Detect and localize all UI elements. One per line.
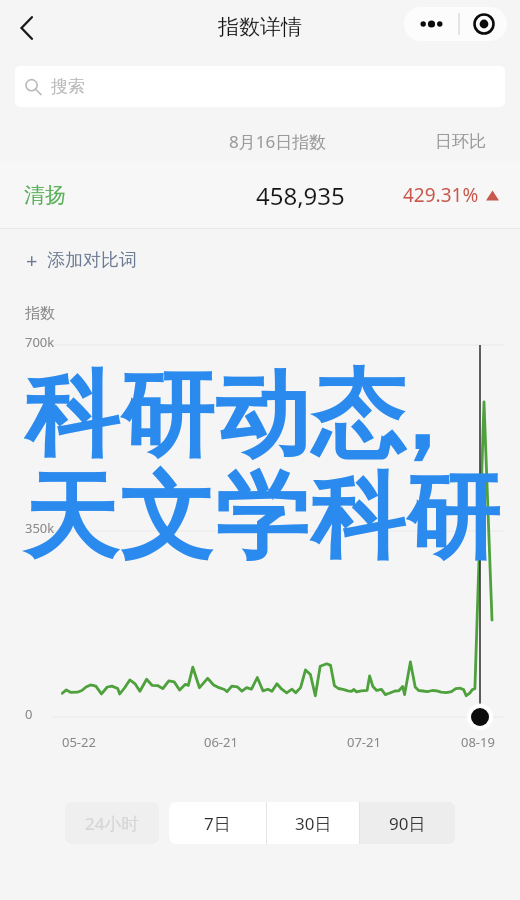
button[interactable]: 30日 xyxy=(267,802,359,844)
staticText: 08-19 xyxy=(461,733,495,751)
staticText: 清扬 xyxy=(24,182,66,208)
button[interactable]: 清扬 xyxy=(0,161,520,229)
button[interactable]: Close mini program xyxy=(460,7,507,41)
staticText: 700k xyxy=(25,333,55,351)
staticText: 日环比 xyxy=(435,131,486,152)
staticText: 24小时 xyxy=(85,812,139,835)
button[interactable]: More options xyxy=(404,7,458,41)
staticText: 30日 xyxy=(295,812,332,835)
button[interactable]: 90日 xyxy=(360,802,455,844)
staticText: 搜索 xyxy=(51,76,85,97)
staticText: 458,935 xyxy=(256,179,345,212)
button[interactable]: 24小时 xyxy=(65,802,159,844)
staticText: 350k xyxy=(25,519,55,537)
staticText: 06-21 xyxy=(204,733,238,751)
staticText: 添加对比词 xyxy=(47,249,137,272)
staticText: ， xyxy=(373,358,469,476)
button[interactable]: 7日 xyxy=(169,802,266,844)
staticText: 429.31% xyxy=(403,182,479,208)
staticText: 指数 xyxy=(25,304,55,323)
button[interactable]: 搜索 xyxy=(15,66,505,107)
staticText: 8月16日指数 xyxy=(229,130,327,153)
button[interactable]: Back xyxy=(4,6,48,50)
button[interactable]: + xyxy=(0,229,520,291)
staticText: + xyxy=(26,247,38,274)
staticText: 90日 xyxy=(389,812,426,835)
staticText: 05-22 xyxy=(62,733,96,751)
staticText: 科研动态 xyxy=(24,356,406,474)
staticText: 天文学科研 xyxy=(24,458,502,576)
staticText: 0 xyxy=(25,705,33,723)
staticText: 指数详情 xyxy=(218,14,302,40)
staticText: 7日 xyxy=(204,812,231,835)
staticText: 07-21 xyxy=(347,733,381,751)
